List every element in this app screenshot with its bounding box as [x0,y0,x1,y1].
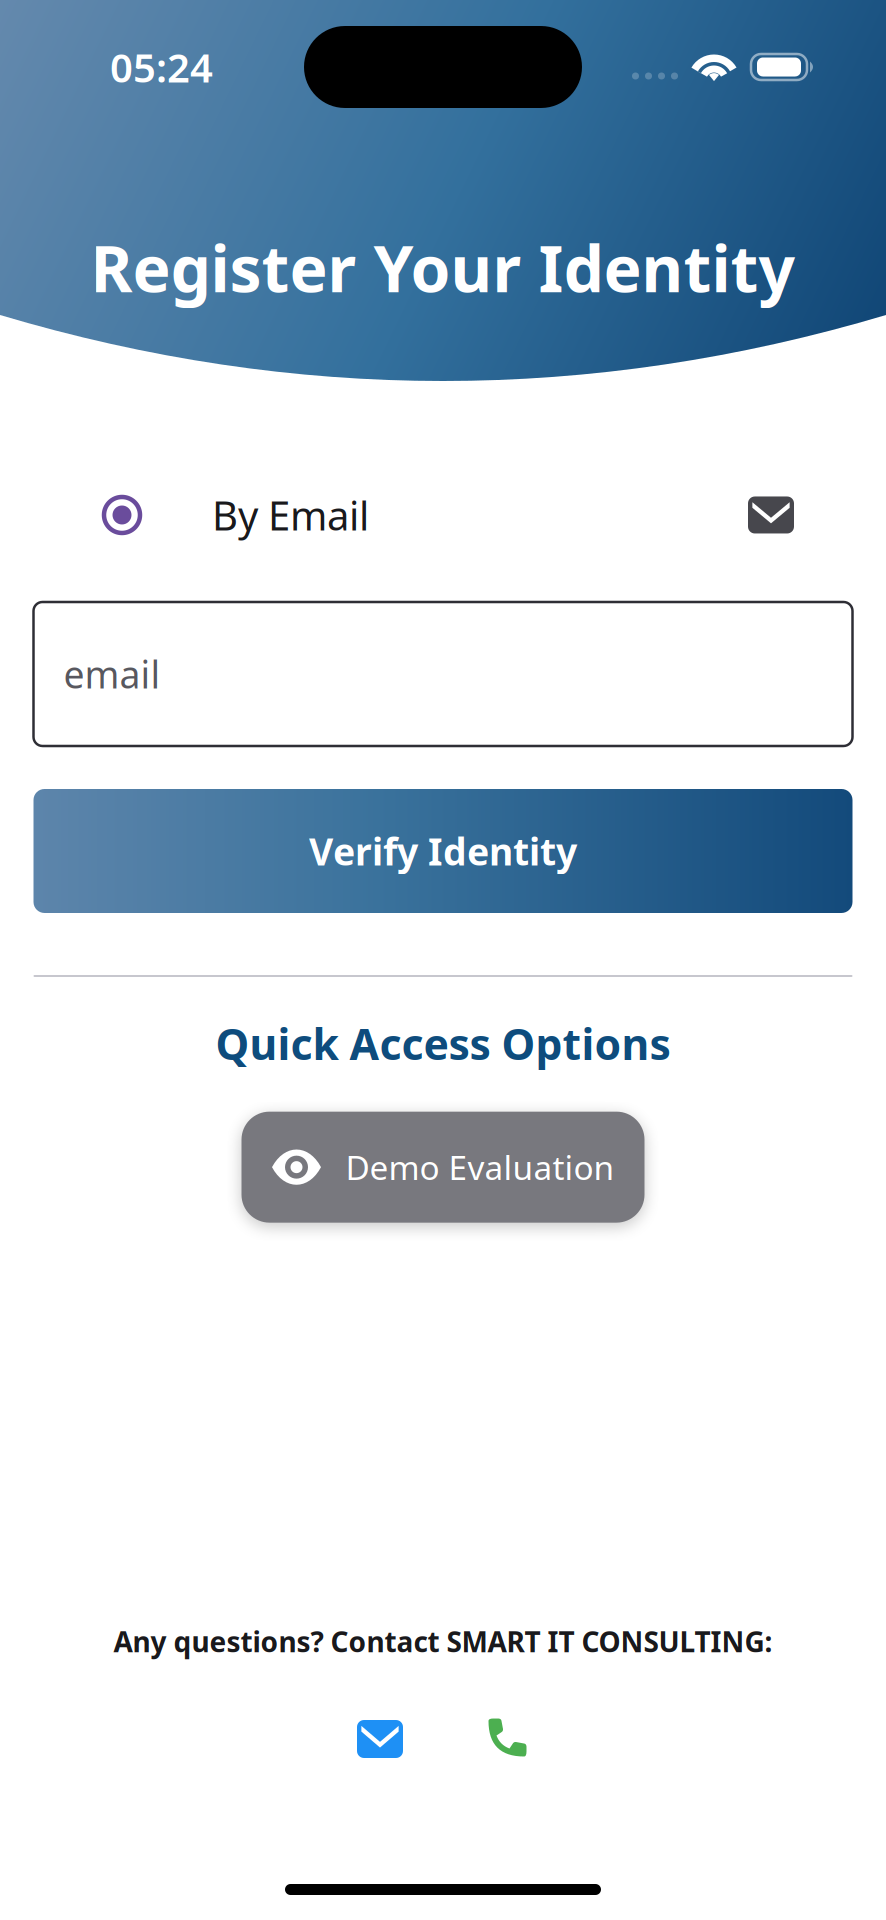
staticText: Any questions? Contact SMART IT CONSULTI… [113,1623,772,1660]
button[interactable]: Email us [357,1720,403,1758]
button[interactable]: Call us [485,1718,529,1760]
button[interactable]: Demo Evaluation [241,1112,644,1223]
staticText: 05:24 [110,40,213,93]
staticText: Verify Identity [309,826,577,876]
button[interactable]: By Email [0,484,886,546]
staticText: email [63,649,160,699]
staticText: Quick Access Options [215,1015,670,1072]
staticText: Demo Evaluation [345,1145,614,1189]
staticText: By Email [212,488,369,541]
button[interactable]: Verify Identity [33,789,852,913]
staticText: Register Your Identity [90,225,795,310]
